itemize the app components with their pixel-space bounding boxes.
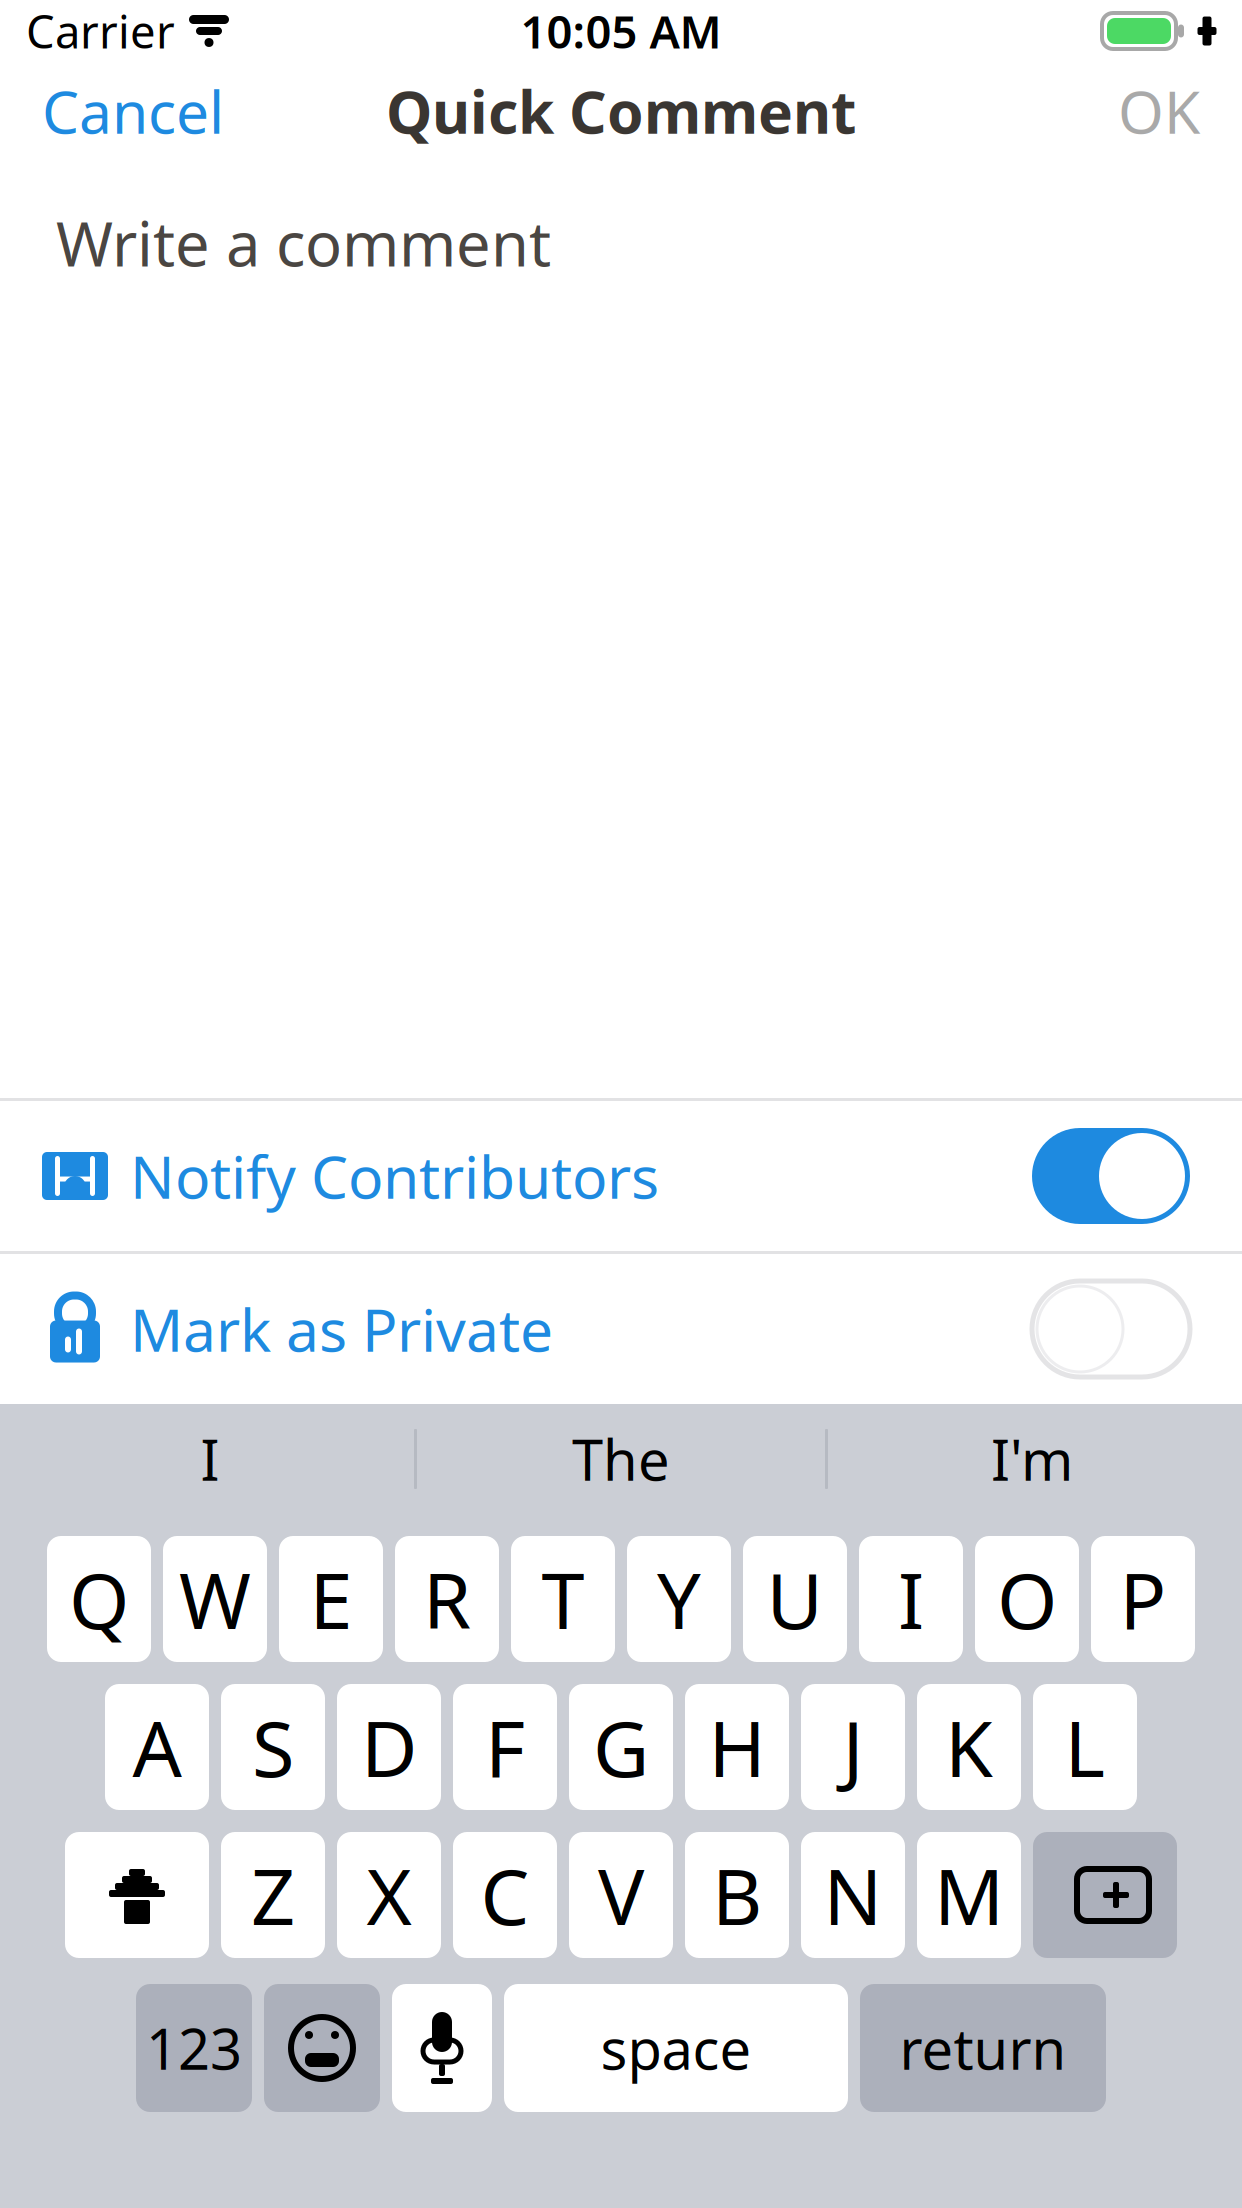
button[interactable]: K	[917, 1684, 1021, 1810]
staticText: I	[200, 1422, 219, 1496]
button[interactable]: 123	[136, 1984, 252, 2112]
button[interactable]: P	[1091, 1536, 1195, 1662]
button[interactable]: N	[801, 1832, 905, 1958]
staticText: S	[252, 1696, 294, 1798]
staticText: 10:05 AM	[520, 1, 721, 61]
button[interactable]: Shift	[65, 1832, 209, 1958]
button[interactable]: S	[221, 1684, 325, 1810]
button[interactable]: F	[453, 1684, 557, 1810]
button[interactable]: R	[395, 1536, 499, 1662]
staticText: U	[766, 1548, 823, 1650]
button[interactable]: I'm	[828, 1404, 1236, 1514]
staticText: I	[898, 1548, 924, 1650]
staticText: V	[598, 1844, 644, 1946]
staticText: T	[541, 1548, 584, 1650]
button[interactable]: A	[105, 1684, 209, 1810]
staticText: Y	[657, 1548, 701, 1650]
button[interactable]: W	[163, 1536, 267, 1662]
button[interactable]: O	[975, 1536, 1079, 1662]
staticText: Z	[251, 1844, 295, 1946]
staticText: O	[997, 1548, 1057, 1650]
staticText: W	[179, 1548, 251, 1650]
button[interactable]: G	[569, 1684, 673, 1810]
button[interactable]: X	[337, 1832, 441, 1958]
staticText: Mark as Private	[130, 1290, 553, 1368]
button[interactable]: J	[801, 1684, 905, 1810]
button[interactable]: return	[860, 1984, 1106, 2112]
button[interactable]: Q	[47, 1536, 151, 1662]
staticText: Cancel	[42, 72, 224, 150]
button[interactable]: Mark as Private	[0, 1254, 1242, 1404]
staticText: Q	[69, 1548, 129, 1650]
staticText: G	[593, 1696, 649, 1798]
staticText: C	[480, 1844, 529, 1946]
staticText: The	[572, 1422, 670, 1496]
staticText: A	[132, 1696, 181, 1798]
staticText: Quick Comment	[386, 72, 856, 150]
button[interactable]: Y	[627, 1536, 731, 1662]
button[interactable]: E	[279, 1536, 383, 1662]
staticText: N	[823, 1844, 882, 1946]
button[interactable]: Notify Contributors	[0, 1101, 1242, 1251]
button[interactable]: H	[685, 1684, 789, 1810]
staticText: return	[899, 2011, 1066, 2085]
staticText: R	[423, 1548, 471, 1650]
button[interactable]: space	[504, 1984, 848, 2112]
button[interactable]: Delete	[1033, 1832, 1177, 1958]
staticText: X	[366, 1844, 411, 1946]
staticText: L	[1064, 1696, 1105, 1798]
staticText: E	[309, 1548, 352, 1650]
staticText: space	[600, 2011, 751, 2085]
staticText: J	[842, 1696, 863, 1798]
staticText: OK	[1118, 72, 1200, 150]
staticText: Notify Contributors	[130, 1137, 659, 1215]
button[interactable]: V	[569, 1832, 673, 1958]
button[interactable]: C	[453, 1832, 557, 1958]
button[interactable]: OK	[1096, 56, 1222, 166]
staticText: Write a comment	[56, 202, 551, 283]
button[interactable]: M	[917, 1832, 1021, 1958]
staticText: F	[485, 1696, 525, 1798]
staticText: P	[1119, 1548, 1166, 1650]
button[interactable]: U	[743, 1536, 847, 1662]
staticText: H	[708, 1696, 765, 1798]
button[interactable]: I	[6, 1404, 414, 1514]
staticText: 123	[146, 2011, 242, 2085]
staticText: D	[361, 1696, 417, 1798]
staticText: M	[934, 1844, 1004, 1946]
staticText: K	[945, 1696, 993, 1798]
staticText: Carrier	[26, 1, 175, 61]
button[interactable]: Dictation	[392, 1984, 492, 2112]
button[interactable]: B	[685, 1832, 789, 1958]
staticText: B	[712, 1844, 762, 1946]
button[interactable]: T	[511, 1536, 615, 1662]
button[interactable]: D	[337, 1684, 441, 1810]
staticText: I'm	[991, 1422, 1073, 1496]
button[interactable]: Cancel	[20, 56, 246, 166]
button[interactable]: L	[1033, 1684, 1137, 1810]
button[interactable]: The	[417, 1404, 825, 1514]
button[interactable]: Emoji	[264, 1984, 380, 2112]
button[interactable]: I	[859, 1536, 963, 1662]
button[interactable]: Z	[221, 1832, 325, 1958]
